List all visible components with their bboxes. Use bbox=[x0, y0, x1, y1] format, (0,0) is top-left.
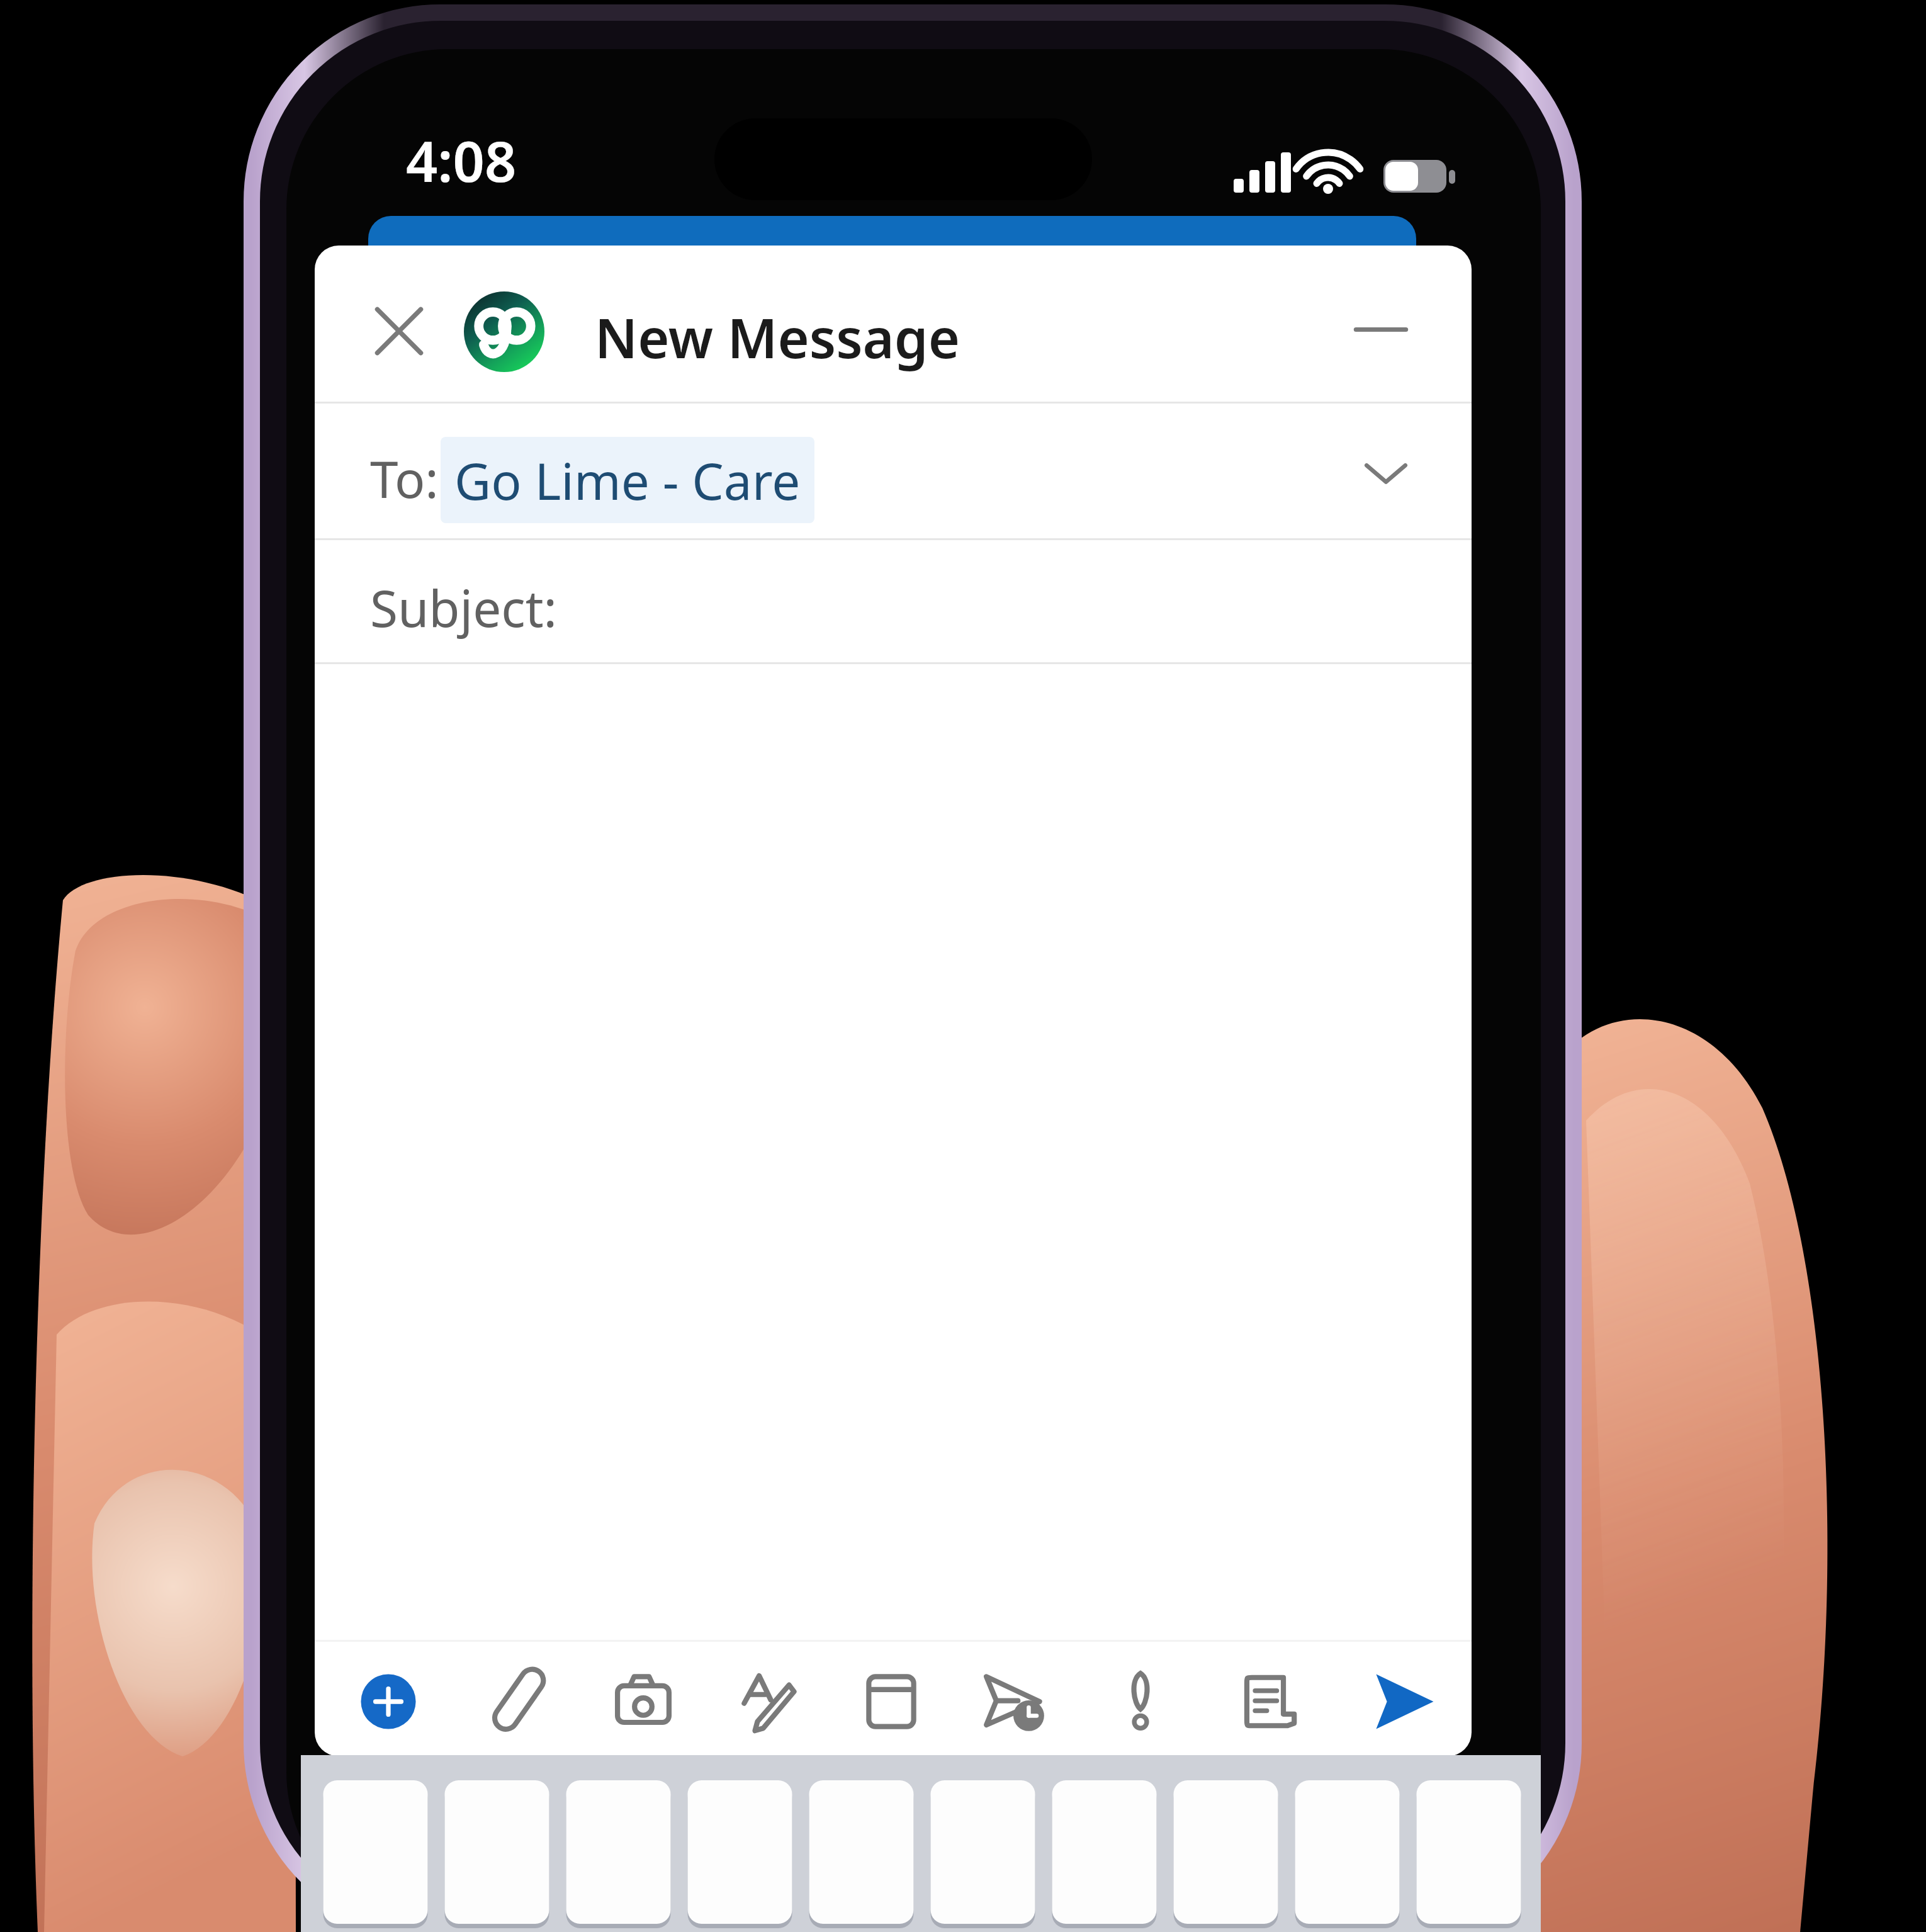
button[interactable]: Expand recipients bbox=[1346, 434, 1426, 510]
button[interactable]: Go Lime - Care bbox=[441, 437, 814, 523]
button[interactable]: Send later bbox=[973, 1660, 1056, 1743]
button[interactable]: Card bbox=[850, 1660, 933, 1743]
staticText: Subject: bbox=[370, 573, 558, 641]
button[interactable]: Subject: bbox=[315, 540, 1472, 662]
staticText: To: bbox=[370, 444, 439, 512]
button[interactable]: Format text bbox=[725, 1660, 808, 1743]
staticText: 4:08 bbox=[406, 123, 517, 198]
button[interactable]: Close bbox=[359, 291, 439, 371]
button[interactable]: Send bbox=[1362, 1660, 1445, 1743]
button[interactable]: Attach file bbox=[476, 1660, 559, 1743]
button[interactable]: Camera bbox=[602, 1660, 685, 1743]
button[interactable]: Set importance bbox=[1099, 1660, 1182, 1743]
staticText: Go Lime - Care bbox=[454, 446, 801, 514]
button[interactable]: Template bbox=[1224, 1660, 1307, 1743]
button[interactable]: Minimize bbox=[1341, 291, 1421, 371]
button[interactable]: Add bbox=[347, 1660, 430, 1743]
staticText: New Message bbox=[595, 300, 960, 374]
